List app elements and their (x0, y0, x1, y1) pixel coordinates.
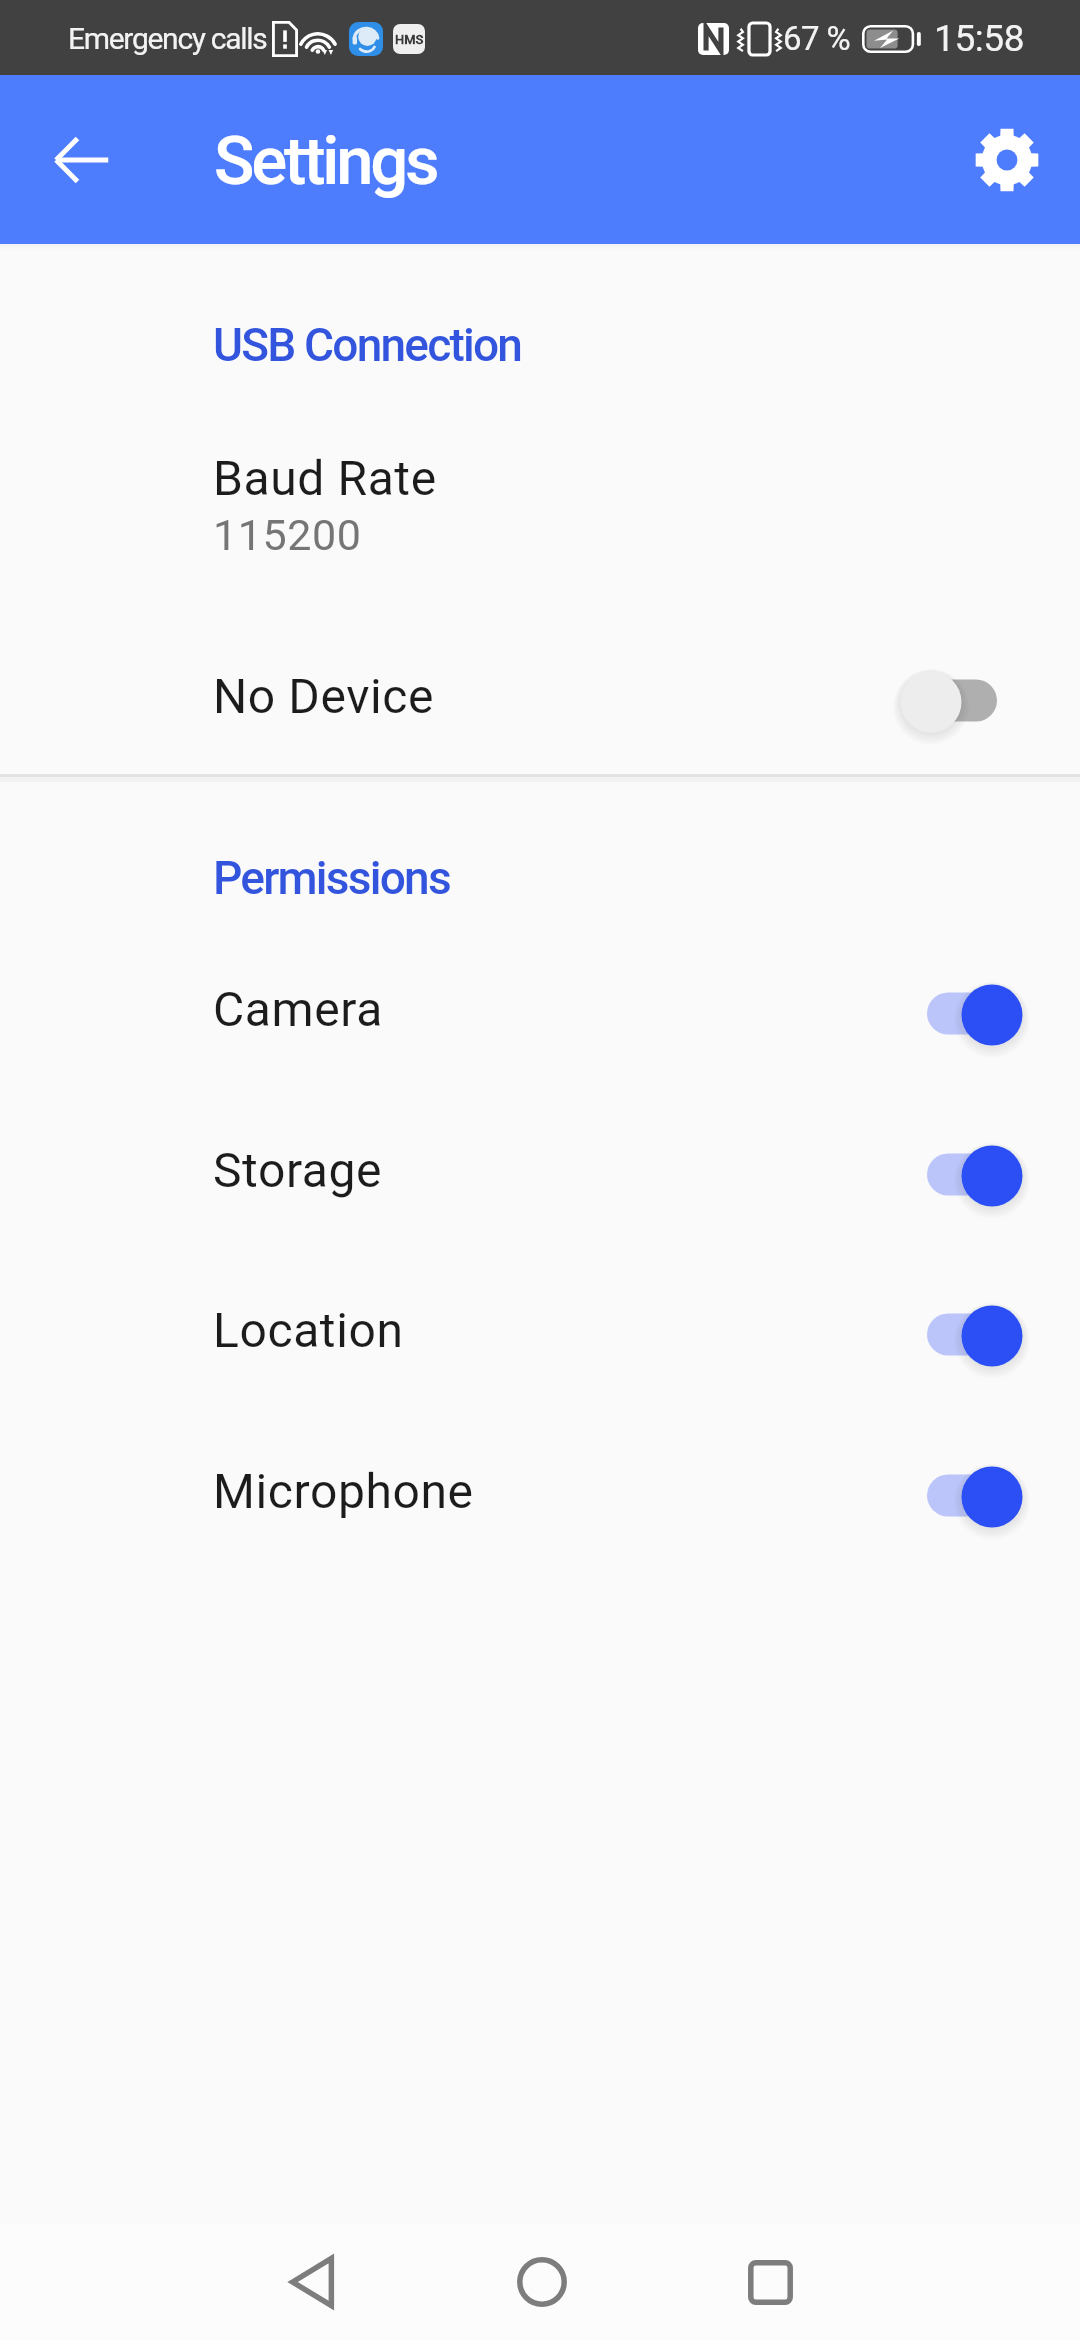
button[interactable]: Camera (0, 946, 1080, 1073)
staticText: Microphone (213, 1463, 474, 1519)
button[interactable]: Baud Rate (0, 425, 1080, 565)
button[interactable]: No Device (0, 633, 1080, 760)
staticText: 67 % (783, 19, 851, 58)
button[interactable]: Recent apps (690, 2224, 850, 2340)
staticText: Emergency calls (68, 21, 267, 56)
staticText: HMS (395, 32, 424, 47)
staticText: Storage (213, 1142, 383, 1198)
button[interactable]: Location (0, 1267, 1080, 1394)
staticText: Baud Rate (213, 450, 437, 506)
staticText: 115200 (213, 510, 362, 560)
staticText: 15:58 (934, 17, 1025, 60)
staticText: Camera (213, 981, 383, 1037)
staticText: Location (213, 1302, 404, 1358)
button[interactable]: Back (29, 108, 133, 212)
staticText: USB Connection (213, 318, 522, 372)
button[interactable]: Back (232, 2224, 392, 2340)
button[interactable]: Home (462, 2224, 622, 2340)
button[interactable]: Settings (955, 108, 1059, 212)
staticText: No Device (213, 668, 435, 724)
staticText: Permissions (213, 851, 450, 905)
button[interactable]: Storage (0, 1107, 1080, 1234)
button[interactable]: Microphone (0, 1428, 1080, 1555)
staticText: Settings (214, 122, 437, 201)
